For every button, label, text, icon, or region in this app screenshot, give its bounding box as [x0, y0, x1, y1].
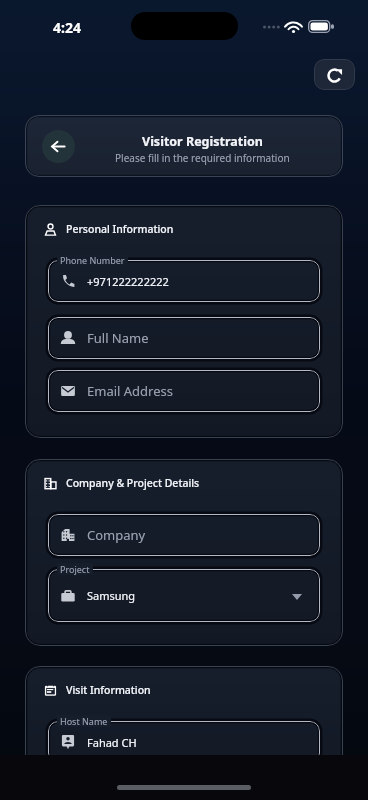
staticText: Company: [87, 526, 146, 544]
staticText: 4:24: [53, 18, 81, 37]
button[interactable]: Full Name: [48, 317, 320, 359]
button[interactable]: +971222222222: [48, 260, 320, 302]
staticText: Visitor Registration: [142, 133, 263, 150]
staticText: Samsung: [87, 588, 136, 603]
staticText: Please fill in the required information: [115, 151, 290, 165]
button[interactable]: Samsung: [48, 569, 320, 622]
staticText: +971222222222: [87, 274, 169, 289]
button[interactable]: Refresh: [314, 59, 355, 90]
button[interactable]: Fahad CH: [48, 721, 320, 763]
staticText: Visit Information: [66, 683, 151, 697]
staticText: Email Address: [87, 382, 173, 400]
button[interactable]: Email Address: [48, 370, 320, 412]
staticText: Full Name: [87, 329, 149, 347]
staticText: Project: [60, 563, 90, 575]
staticText: Fahad CH: [87, 735, 137, 750]
staticText: Company & Project Details: [66, 476, 200, 490]
staticText: Host Name: [60, 715, 108, 727]
button[interactable]: Company: [48, 514, 320, 556]
staticText: Personal Information: [66, 222, 174, 236]
button[interactable]: Back: [42, 130, 75, 163]
staticText: Phone Number: [60, 254, 125, 266]
